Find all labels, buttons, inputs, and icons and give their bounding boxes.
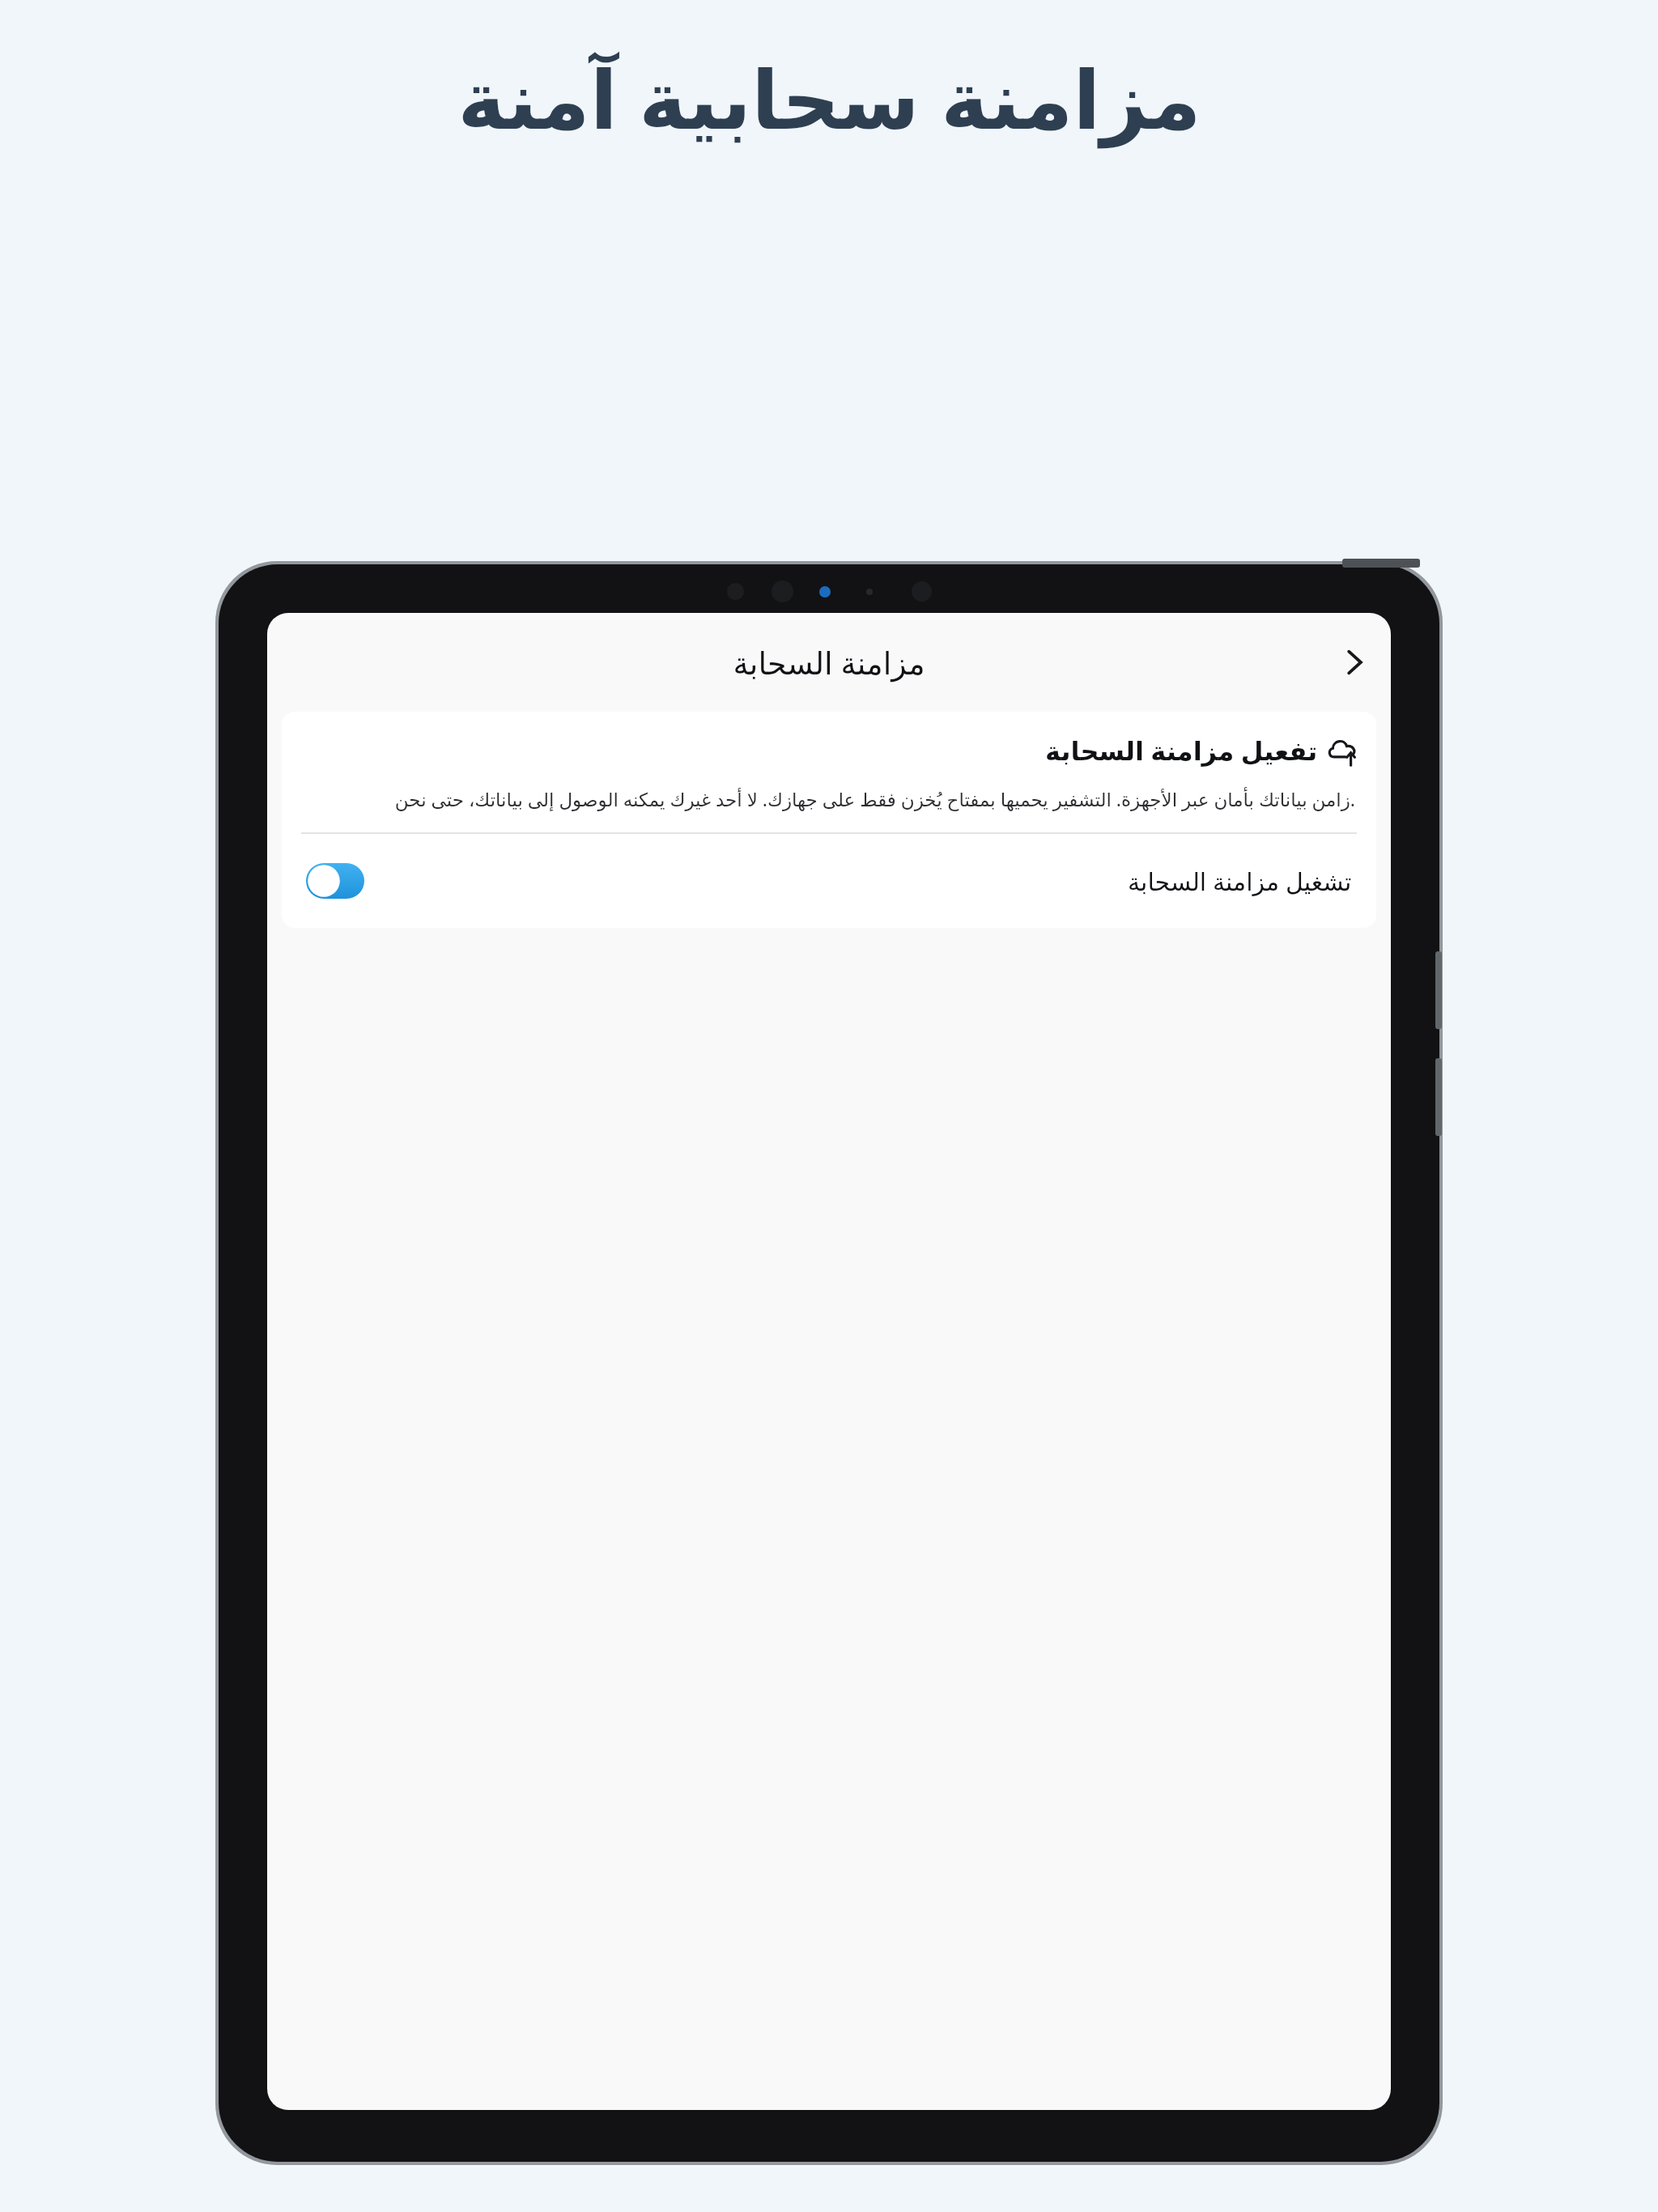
staticText: تفعيل مزامنة السحابة xyxy=(1045,733,1318,768)
button[interactable]: Toggle cloud sync xyxy=(306,863,364,899)
button[interactable]: Back xyxy=(1318,626,1391,699)
staticText: مزامنة سحابية آمنة xyxy=(457,42,1201,152)
staticText: زامن بياناتك بأمان عبر الأجهزة. التشفير … xyxy=(303,786,1355,811)
staticText: مزامنة السحابة xyxy=(733,641,925,683)
button[interactable]: Toggle cloud sync xyxy=(282,834,1376,928)
staticText: تشغيل مزامنة السحابة xyxy=(1128,865,1352,898)
